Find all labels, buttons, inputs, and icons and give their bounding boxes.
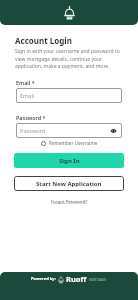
- staticText: Account Login: [15, 35, 72, 46]
- staticText: Password *: [16, 114, 46, 121]
- staticText: Email *: [16, 79, 35, 86]
- staticText: Powered by:: [31, 276, 56, 282]
- button[interactable]: Remember Username: [41, 139, 98, 147]
- button[interactable]: Forgot Password?: [51, 198, 88, 204]
- button[interactable]: Start New Application: [14, 176, 124, 191]
- staticText: Email: [20, 92, 35, 100]
- staticText: Start New Application: [36, 180, 102, 188]
- staticText: Remember Username: [49, 140, 98, 146]
- button[interactable]: Email: [16, 88, 122, 103]
- staticText: Ruoff: [66, 274, 87, 284]
- button[interactable]: Show password: [110, 127, 117, 134]
- staticText: Sign In: [59, 157, 80, 165]
- button[interactable]: Sign In: [14, 153, 124, 168]
- staticText: Password: [20, 127, 46, 135]
- staticText: MORTGAGE: [89, 278, 106, 282]
- button[interactable]: Password: [16, 123, 122, 138]
- staticText: Sign in with your username and password …: [15, 48, 124, 69]
